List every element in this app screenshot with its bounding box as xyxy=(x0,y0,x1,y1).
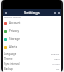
button[interactable]: Backup xyxy=(3,66,61,71)
button[interactable]: Alerts xyxy=(3,43,61,51)
staticText: English xyxy=(51,52,60,55)
staticText: 15 min xyxy=(52,62,60,65)
staticText: Settings xyxy=(24,10,40,15)
button[interactable]: More options xyxy=(57,11,61,15)
staticText: Theme xyxy=(4,57,13,61)
staticText: Privacy xyxy=(9,29,20,33)
staticText: Light xyxy=(54,57,60,60)
button[interactable]: Privacy xyxy=(3,27,61,35)
staticText: Account xyxy=(9,21,21,25)
button[interactable]: Theme xyxy=(3,56,61,61)
button[interactable]: Sync interval xyxy=(3,61,61,66)
button[interactable]: Language xyxy=(3,51,61,56)
button[interactable]: Account xyxy=(3,19,61,27)
button[interactable]: Search xyxy=(53,11,57,15)
staticText: General settings xyxy=(4,16,21,19)
staticText: Backup xyxy=(4,67,13,71)
staticText: Alerts xyxy=(9,45,18,49)
staticText: Language xyxy=(4,52,17,56)
button[interactable]: Navigate up xyxy=(4,11,8,15)
button[interactable]: Storage xyxy=(3,35,61,43)
staticText: Storage xyxy=(9,37,20,41)
staticText: Sync interval xyxy=(4,62,20,66)
staticText: On xyxy=(56,67,60,70)
